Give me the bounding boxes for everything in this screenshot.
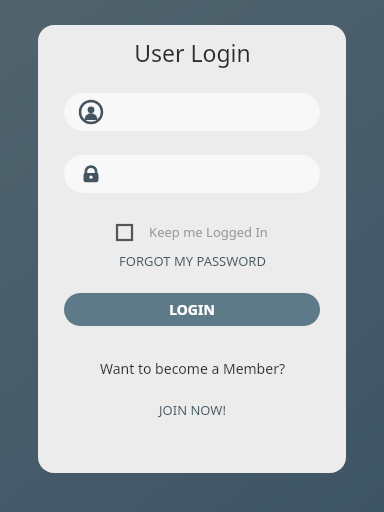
button[interactable]: FORGOT MY PASSWORD [113,250,272,272]
staticText: LOGIN [169,300,215,319]
button[interactable]: Username [64,93,320,131]
staticText: Keep me Logged In [149,223,268,241]
button[interactable]: JOIN NOW! [153,399,232,421]
button[interactable]: LOGIN [64,293,320,326]
staticText: FORGOT MY PASSWORD [119,252,266,270]
button[interactable]: Password [64,155,320,193]
staticText: User Login [134,37,251,68]
staticText: Want to become a Member? [100,359,285,378]
button[interactable]: Keep me Logged In [112,220,272,244]
staticText: JOIN NOW! [159,401,226,419]
